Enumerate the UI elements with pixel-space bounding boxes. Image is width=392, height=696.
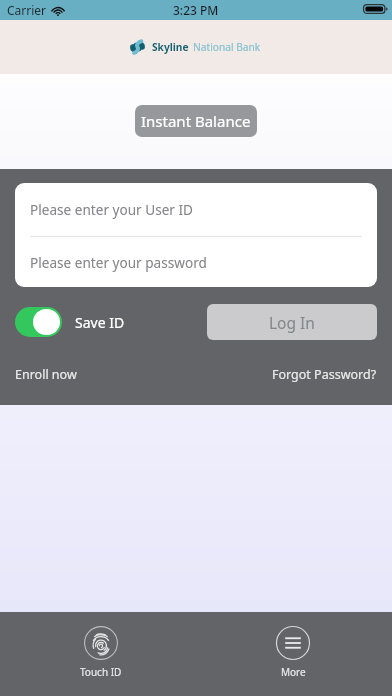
button[interactable]: Touch ID sign in [70, 612, 132, 685]
staticText: Save ID [75, 313, 125, 332]
button[interactable]: More options [266, 612, 320, 685]
staticText: National Bank [193, 40, 261, 54]
button[interactable]: Please enter your User ID [15, 183, 377, 236]
staticText: Log In [269, 312, 315, 333]
staticText: Instant Balance [141, 111, 251, 131]
button[interactable]: Enroll now [15, 360, 77, 389]
button[interactable]: Please enter your password [15, 237, 377, 287]
staticText: Please enter your password [30, 253, 207, 272]
staticText: Enroll now [15, 366, 77, 383]
staticText: Carrier [7, 2, 47, 18]
button[interactable]: Save ID toggle [15, 307, 62, 337]
staticText: Touch ID [80, 665, 122, 679]
staticText: 3:23 PM [173, 2, 219, 18]
button[interactable]: Log In [207, 304, 377, 340]
button[interactable]: Forgot Password? [272, 360, 377, 389]
staticText: Please enter your User ID [30, 200, 194, 219]
staticText: Skyline [152, 40, 189, 54]
staticText: Forgot Password? [272, 366, 377, 383]
staticText: More [281, 665, 306, 679]
button[interactable]: Instant Balance [135, 105, 257, 137]
